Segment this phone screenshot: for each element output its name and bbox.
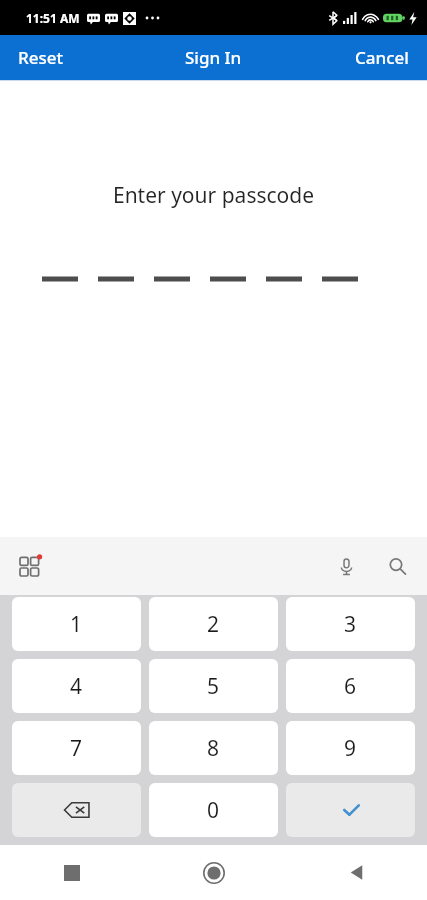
button[interactable]: Recents bbox=[0, 845, 143, 900]
button[interactable]: Voice input bbox=[329, 549, 364, 584]
button[interactable]: 6 bbox=[286, 659, 415, 713]
staticText: Enter your passcode bbox=[0, 181, 427, 210]
staticText: 3 bbox=[344, 610, 357, 639]
button[interactable]: 2 bbox=[149, 597, 278, 651]
button[interactable]: 3 bbox=[286, 597, 415, 651]
button[interactable]: Backspace bbox=[12, 783, 141, 837]
button[interactable]: 9 bbox=[286, 721, 415, 775]
button[interactable]: Enter bbox=[286, 783, 415, 837]
staticText: Sign In bbox=[185, 46, 242, 69]
button[interactable]: Keyboard options bbox=[14, 550, 46, 582]
button[interactable]: Back bbox=[285, 845, 427, 900]
staticText: 5 bbox=[207, 672, 220, 701]
staticText: Reset bbox=[18, 46, 64, 69]
button[interactable]: 0 bbox=[149, 783, 278, 837]
staticText: 4 bbox=[70, 672, 83, 701]
button[interactable]: 8 bbox=[149, 721, 278, 775]
button[interactable]: Search bbox=[380, 549, 415, 584]
button[interactable]: 5 bbox=[149, 659, 278, 713]
button[interactable]: 1 bbox=[12, 597, 141, 651]
staticText: 0 bbox=[207, 796, 220, 825]
staticText: 8 bbox=[207, 734, 220, 763]
staticText: 7 bbox=[70, 734, 83, 763]
button[interactable]: Cancel bbox=[337, 35, 427, 80]
staticText: Cancel bbox=[355, 46, 409, 69]
staticText: 1 bbox=[70, 610, 83, 639]
staticText: 11:51 AM bbox=[26, 10, 80, 26]
staticText: 9 bbox=[344, 734, 357, 763]
button[interactable]: Home bbox=[143, 845, 285, 900]
button[interactable]: Reset bbox=[0, 35, 82, 80]
staticText: 2 bbox=[207, 610, 220, 639]
staticText: 6 bbox=[344, 672, 357, 701]
button[interactable]: 4 bbox=[12, 659, 141, 713]
button[interactable]: 7 bbox=[12, 721, 141, 775]
